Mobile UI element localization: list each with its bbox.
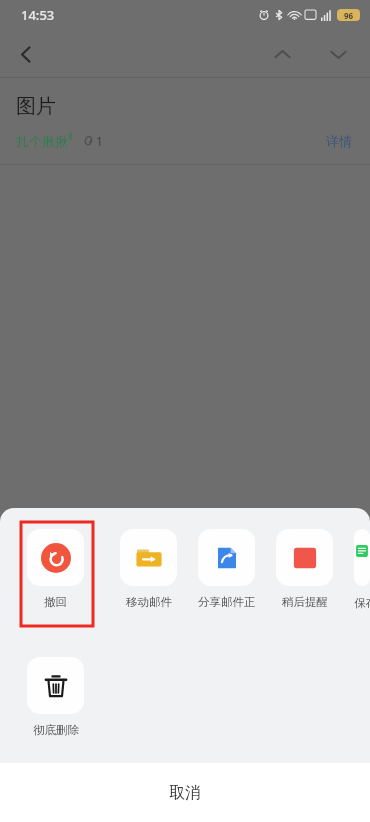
staticText: 1 [96,133,103,149]
staticText: 详情 [326,133,352,149]
staticText: 取消 [169,783,201,803]
button[interactable]: Next message [320,36,356,72]
button[interactable]: 详情 [322,130,356,152]
staticText: 分享邮件正文 [198,595,255,609]
button[interactable]: Back [6,34,46,74]
staticText: 96 [344,10,354,21]
button[interactable]: 移动邮件 [120,529,177,609]
staticText: 稍后提醒 [282,595,328,609]
button[interactable]: 取消 [0,763,370,822]
button[interactable]: 撤回 [27,529,84,609]
button[interactable]: 分享邮件正文 [198,529,255,609]
staticText: 扎个揪揪 [16,133,68,149]
button[interactable]: 稍后提醒 [276,529,333,609]
staticText: 14:53 [21,6,55,24]
staticText: 图片 [16,94,56,119]
button[interactable]: Previous message [264,36,300,72]
staticText: 保存到… [354,595,370,611]
staticText: 撤回 [44,595,67,609]
staticText: 移动邮件 [126,595,172,609]
staticText: 彻底删除 [33,723,79,737]
button[interactable]: 保存到… [354,529,370,611]
staticText: 8 [68,131,73,142]
button[interactable]: 彻底删除 [27,657,84,737]
